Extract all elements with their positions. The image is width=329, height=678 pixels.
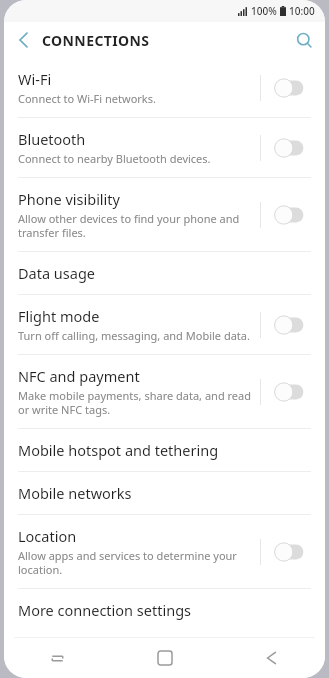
button[interactable]: Mobile networks (4, 472, 325, 514)
button[interactable]: Phone visibility toggle (261, 198, 317, 232)
button[interactable]: Mobile hotspot and tethering (4, 429, 325, 471)
button[interactable]: Bluetooth toggle (261, 131, 317, 165)
button[interactable]: NFC and payment (4, 355, 325, 428)
staticText: Data usage (18, 263, 95, 283)
button[interactable]: Back (4, 22, 42, 58)
button[interactable]: Wi-Fi (4, 58, 325, 117)
button[interactable]: Back (218, 638, 325, 678)
button[interactable]: Location (4, 515, 325, 588)
button[interactable]: Data usage (4, 252, 325, 294)
staticText: Mobile networks (18, 483, 132, 503)
staticText: Connect to Wi-Fi networks. (18, 91, 156, 106)
button[interactable]: Flight mode toggle (261, 308, 317, 342)
button[interactable]: Search (283, 22, 325, 58)
staticText: Flight mode (18, 306, 100, 326)
button[interactable]: NFC and payment toggle (261, 375, 317, 409)
button[interactable]: More connection settings (4, 589, 325, 631)
staticText: Location (18, 526, 77, 546)
staticText: CONNECTIONS (42, 31, 150, 50)
button[interactable]: Bluetooth (4, 118, 325, 177)
button[interactable]: Recents (4, 638, 111, 678)
staticText: 10:00 (289, 4, 315, 18)
button[interactable]: Home (111, 638, 218, 678)
staticText: Mobile hotspot and tethering (18, 440, 219, 460)
staticText: Connect to nearby Bluetooth devices. (18, 151, 211, 166)
staticText: More connection settings (18, 600, 191, 620)
staticText: Allow other devices to find your phone a… (18, 211, 252, 240)
staticText: Turn off calling, messaging, and Mobile … (18, 328, 250, 343)
staticText: NFC and payment (18, 366, 140, 386)
staticText: 100% (251, 4, 277, 18)
staticText: Bluetooth (18, 129, 86, 149)
button[interactable]: Flight mode (4, 295, 325, 354)
staticText: Make mobile payments, share data, and re… (18, 388, 252, 417)
button[interactable]: Wi-Fi toggle (261, 71, 317, 105)
staticText: Phone visibility (18, 189, 120, 209)
staticText: Allow apps and services to determine you… (18, 548, 252, 577)
button[interactable]: Phone visibility (4, 178, 325, 251)
button[interactable]: Location toggle (261, 535, 317, 569)
staticText: Wi-Fi (18, 69, 52, 89)
